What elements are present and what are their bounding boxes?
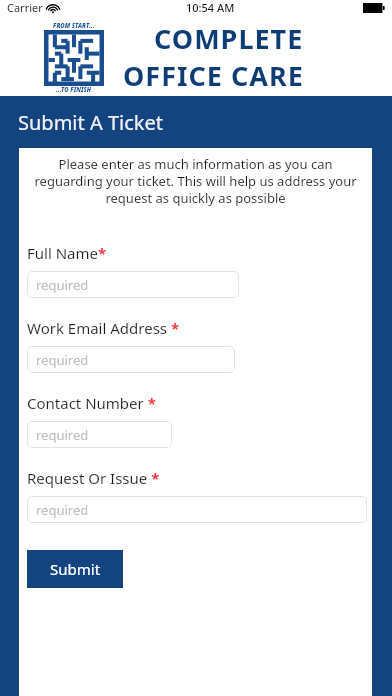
staticText: Carrier: [7, 0, 43, 15]
button[interactable]: required: [27, 271, 239, 298]
staticText: ...TO FINISH: [56, 86, 92, 94]
staticText: COMPLETE: [154, 20, 304, 57]
button[interactable]: required: [27, 346, 235, 373]
staticText: Contact Number *: [27, 393, 156, 413]
staticText: required: [36, 351, 89, 369]
staticText: Request Or Issue *: [27, 468, 160, 488]
staticText: Work Email Address *: [27, 318, 180, 338]
staticText: 10:54 AM: [186, 0, 235, 15]
staticText: required: [36, 501, 89, 519]
staticText: FROM START...: [53, 22, 95, 30]
staticText: Full Name*: [27, 243, 107, 263]
button[interactable]: required: [27, 496, 367, 523]
staticText: required: [36, 276, 89, 294]
staticText: Submit: [50, 559, 101, 579]
button[interactable]: required: [27, 421, 172, 448]
staticText: Please enter as much information as you …: [23, 155, 368, 207]
button[interactable]: Submit: [27, 550, 123, 588]
staticText: OFFICE CARE: [123, 57, 304, 94]
staticText: Submit A Ticket: [18, 109, 163, 136]
staticText: required: [36, 426, 89, 444]
